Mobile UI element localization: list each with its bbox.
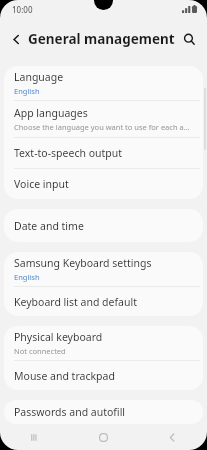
button[interactable]: Back [5, 28, 27, 50]
staticText: Keyboard list and default [14, 295, 137, 309]
staticText: Voice input [14, 177, 69, 191]
button[interactable]: Physical keyboard [4, 326, 203, 360]
button[interactable]: Passwords and autofill [4, 400, 203, 424]
staticText: Text-to-speech output [14, 146, 123, 160]
button[interactable]: App languages [4, 101, 203, 137]
button[interactable]: Date and time [4, 209, 203, 242]
button[interactable]: Home [69, 424, 138, 450]
staticText: Choose the language you want to use for … [14, 122, 193, 132]
button[interactable]: Voice input [4, 169, 203, 199]
staticText: Mouse and trackpad [14, 369, 115, 383]
staticText: Language [14, 70, 64, 84]
button[interactable]: Mouse and trackpad [4, 361, 203, 390]
button[interactable]: Keyboard list and default [4, 287, 203, 316]
button[interactable]: Recents [0, 424, 69, 450]
button[interactable]: Back [138, 424, 207, 450]
staticText: English [14, 272, 40, 282]
staticText: Samsung Keyboard settings [14, 256, 152, 270]
staticText: 10:00 [12, 4, 33, 15]
staticText: Not connected [14, 346, 66, 356]
staticText: Physical keyboard [14, 330, 103, 344]
button[interactable]: Samsung Keyboard settings [4, 252, 203, 286]
staticText: Date and time [14, 219, 84, 233]
staticText: Passwords and autofill [14, 405, 126, 419]
staticText: English [14, 86, 40, 96]
staticText: App languages [14, 106, 88, 120]
button[interactable]: Text-to-speech output [4, 138, 203, 168]
staticText: General management [28, 30, 175, 48]
button[interactable]: Language [4, 66, 203, 100]
button[interactable]: Search [177, 27, 201, 51]
